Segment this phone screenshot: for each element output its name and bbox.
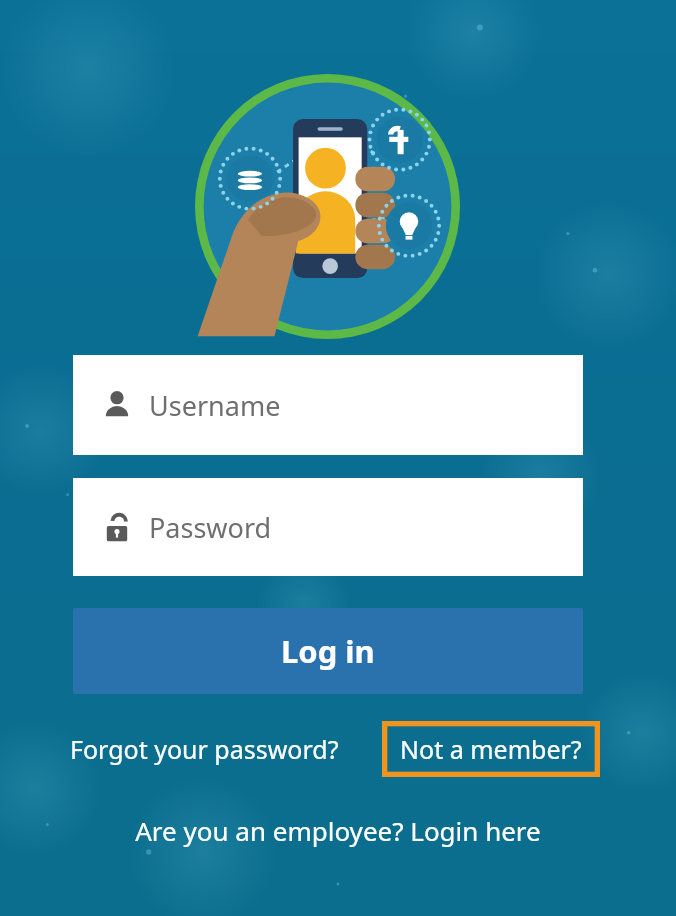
staticText: Log in [281, 630, 375, 672]
staticText: Forgot your password? [70, 732, 339, 766]
button[interactable]: Username [73, 355, 583, 455]
staticText: Are you an employee? Login here [135, 813, 541, 848]
staticText: Password [149, 509, 272, 546]
button[interactable]: Are you an employee? Login here [108, 808, 568, 852]
button[interactable]: Log in [73, 608, 583, 694]
button[interactable]: Forgot your password? [70, 727, 355, 771]
staticText: Not a member? [400, 732, 582, 766]
staticText: Username [149, 387, 281, 424]
button[interactable]: Password [73, 478, 583, 576]
button[interactable]: Not a member? [382, 721, 600, 777]
